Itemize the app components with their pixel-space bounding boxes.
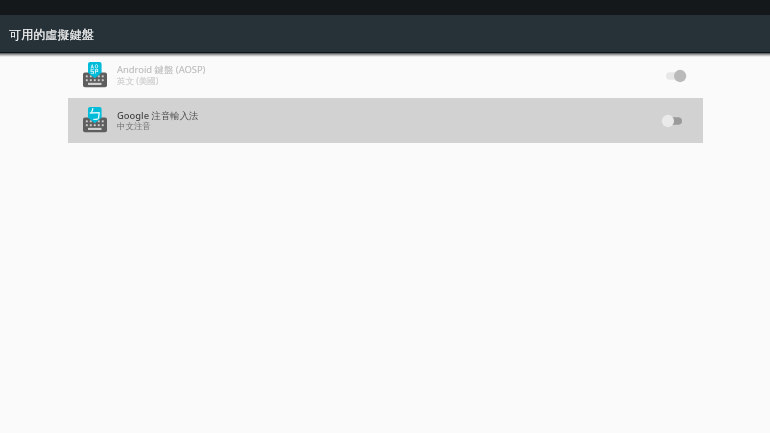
staticText: Android 鍵盤 (AOSP) [117,63,206,76]
staticText: Google 注音輸入法 [117,109,199,122]
staticText: 可用的虛擬鍵盤 [9,27,94,42]
button[interactable]: Toggle input method [666,111,687,131]
button[interactable]: Toggle input method [666,66,687,86]
staticText: 中文注音 [117,121,151,132]
staticText: 英文 (美國) [117,75,159,87]
button[interactable]: Android 鍵盤 (AOSP) [68,53,703,98]
button[interactable]: Google 注音輸入法 [68,98,703,143]
